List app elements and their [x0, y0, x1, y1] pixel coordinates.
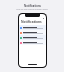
button[interactable]	[19, 25, 46, 30]
staticText: Notifications	[24, 4, 41, 8]
button[interactable]	[19, 35, 46, 40]
staticText: Stay on top of what matters most	[16, 8, 48, 11]
staticText: Notifications	[21, 20, 42, 24]
button[interactable]	[19, 40, 46, 45]
button[interactable]	[19, 30, 46, 35]
